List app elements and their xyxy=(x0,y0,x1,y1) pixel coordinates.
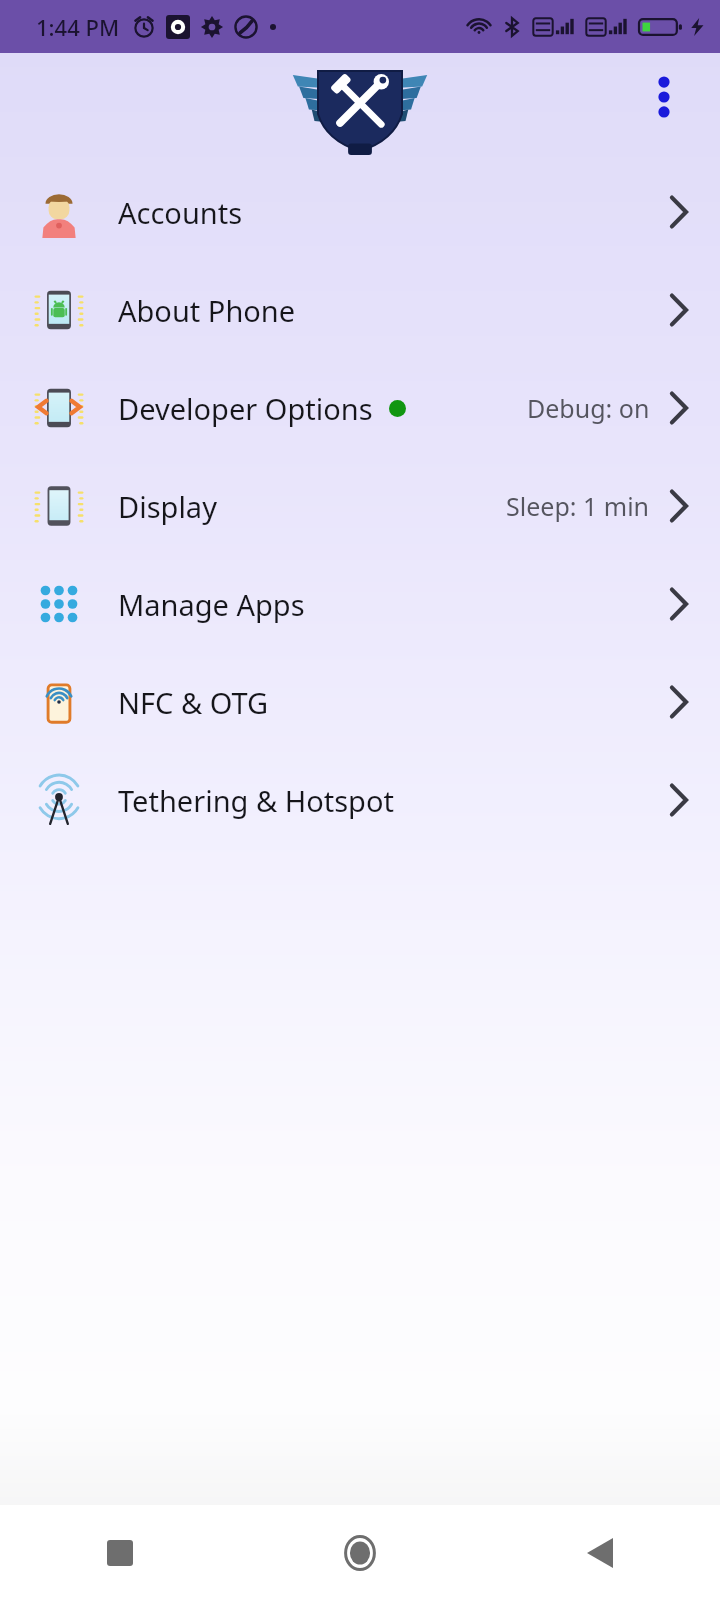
staticText: Debug: on xyxy=(527,391,650,425)
button[interactable]: About Phone xyxy=(0,261,720,359)
staticText: NFC & OTG xyxy=(118,683,269,722)
button[interactable]: Display xyxy=(0,457,720,555)
staticText: 1:44 PM xyxy=(36,12,120,42)
button[interactable]: Recents xyxy=(0,1505,240,1600)
button[interactable]: Back xyxy=(480,1505,720,1600)
staticText: Tethering & Hotspot xyxy=(118,781,394,820)
staticText: Developer Options xyxy=(118,389,373,428)
staticText: Accounts xyxy=(118,193,243,232)
button[interactable]: Home xyxy=(240,1505,480,1600)
staticText: Sleep: 1 min xyxy=(506,489,650,523)
button[interactable]: More options xyxy=(636,69,692,125)
button[interactable]: Developer Options xyxy=(0,359,720,457)
button[interactable]: NFC & OTG xyxy=(0,653,720,751)
staticText: Display xyxy=(118,487,217,526)
button[interactable]: Manage Apps xyxy=(0,555,720,653)
button[interactable]: Tethering & Hotspot xyxy=(0,751,720,849)
button[interactable]: Accounts xyxy=(0,163,720,261)
staticText: Manage Apps xyxy=(118,585,305,624)
staticText: About Phone xyxy=(118,291,296,330)
